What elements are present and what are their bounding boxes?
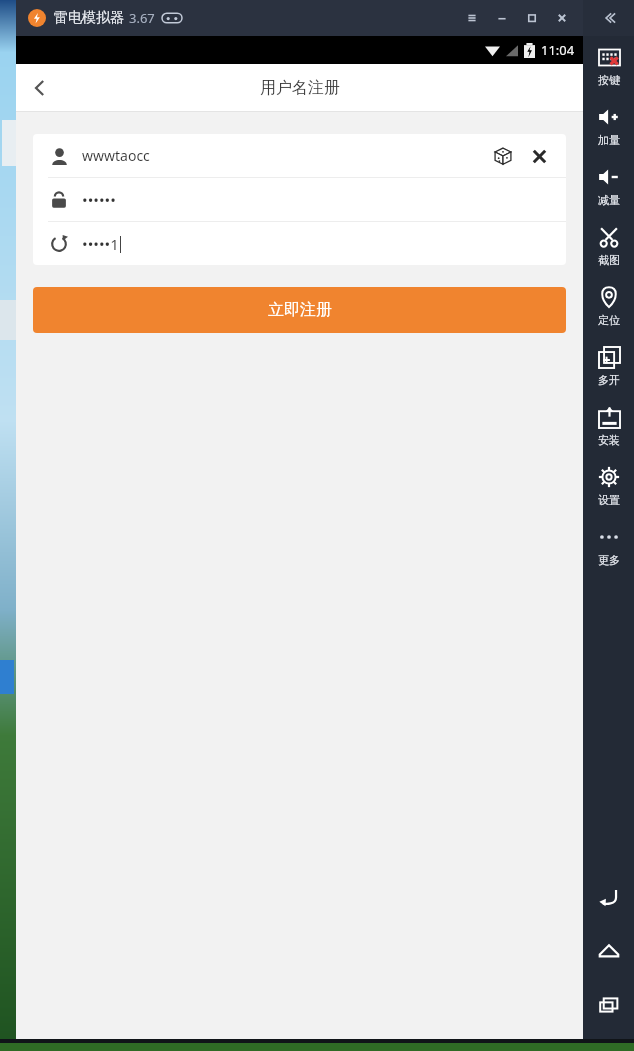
staticText: 按键 — [598, 73, 620, 87]
button[interactable]: Menu — [457, 4, 487, 32]
button[interactable]: •••••• — [33, 178, 566, 221]
button[interactable]: Back — [16, 64, 64, 112]
staticText: 3.67 — [129, 9, 155, 27]
staticText: 立即注册 — [268, 300, 332, 320]
button[interactable]: 安装 — [583, 396, 634, 456]
button[interactable]: 多开 — [583, 336, 634, 396]
button[interactable]: Generate random name — [488, 141, 518, 171]
staticText: 用户名注册 — [260, 78, 340, 98]
button[interactable]: Home — [589, 931, 629, 971]
button[interactable]: •••••1 — [33, 222, 566, 265]
staticText: 雷电模拟器 — [54, 9, 124, 27]
staticText: 定位 — [598, 313, 620, 327]
button[interactable]: Back — [589, 877, 629, 917]
button[interactable]: 减量 — [583, 156, 634, 216]
staticText: 截图 — [598, 253, 620, 267]
staticText: 11:04 — [541, 41, 575, 59]
staticText: 减量 — [598, 193, 620, 207]
button[interactable]: 设置 — [583, 456, 634, 516]
button[interactable]: 加量 — [583, 96, 634, 156]
button[interactable]: Minimize — [487, 4, 517, 32]
button[interactable]: Collapse sidebar — [583, 0, 634, 36]
button[interactable]: Close — [547, 4, 577, 32]
staticText: 多开 — [598, 373, 620, 387]
button[interactable]: 定位 — [583, 276, 634, 336]
staticText: 设置 — [598, 493, 620, 507]
button[interactable]: Recents — [589, 985, 629, 1025]
staticText: 安装 — [598, 433, 620, 447]
button[interactable]: Clear — [524, 141, 554, 171]
button[interactable]: wwwtaocc — [33, 134, 566, 177]
staticText: •••••1 — [82, 234, 119, 254]
staticText: 加量 — [598, 133, 620, 147]
button[interactable]: 立即注册 — [33, 287, 566, 333]
staticText: wwwtaocc — [82, 146, 150, 165]
button[interactable]: 按键 — [583, 36, 634, 96]
button[interactable]: Maximize — [517, 4, 547, 32]
staticText: 更多 — [598, 553, 620, 567]
staticText: •••••• — [82, 190, 116, 210]
button[interactable]: 截图 — [583, 216, 634, 276]
button[interactable]: 更多 — [583, 516, 634, 576]
